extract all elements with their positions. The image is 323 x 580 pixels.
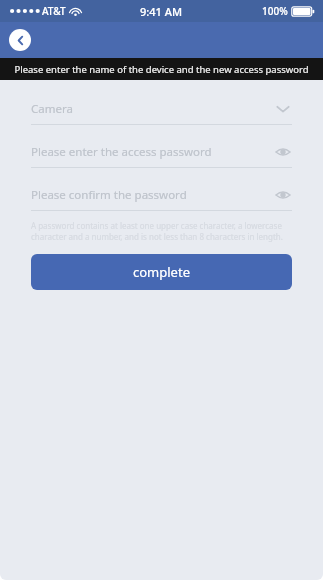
staticText: AT&T (42, 4, 66, 18)
button[interactable]: Please enter the access password (31, 141, 292, 168)
staticText: complete (133, 263, 190, 281)
button[interactable]: Please confirm the password (31, 184, 292, 211)
other: Show confirm password (274, 186, 292, 204)
other: Show password (274, 143, 292, 161)
staticText: 100% (262, 4, 288, 18)
staticText: 9:41 AM (140, 4, 183, 19)
staticText: A password contains at least one upper c… (31, 220, 292, 243)
other: Select device (274, 100, 292, 118)
staticText: Please confirm the password (31, 187, 187, 203)
button[interactable]: Camera (31, 98, 292, 125)
button[interactable]: complete (31, 254, 292, 290)
button[interactable]: Back (9, 29, 31, 51)
staticText: Camera (31, 101, 73, 117)
staticText: Please enter the access password (31, 144, 212, 160)
staticText: Please enter the name of the device and … (14, 63, 309, 76)
